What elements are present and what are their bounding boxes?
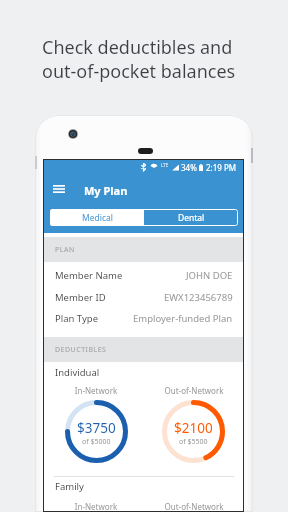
staticText: of $5000 [82, 437, 111, 447]
staticText: Out-of-Network [159, 501, 229, 512]
staticText: of $5500 [179, 437, 208, 447]
staticText: 34% [181, 162, 197, 173]
staticText: $2100 [174, 419, 213, 437]
staticText: $3750 [77, 419, 116, 437]
staticText: Member Name [55, 269, 123, 282]
button[interactable]: Member Name [55, 264, 233, 286]
staticText: Individual [55, 366, 100, 379]
button[interactable]: Dental [144, 209, 238, 226]
staticText: In-Network [61, 385, 131, 396]
staticText: In-Network [61, 501, 131, 512]
staticText: Plan Type [55, 312, 99, 325]
staticText: LTE [161, 162, 169, 168]
staticText: Medical [82, 212, 113, 224]
button[interactable]: Member ID [55, 286, 233, 308]
staticText: 2:19 PM [206, 162, 237, 173]
staticText: Check deductibles and out-of-pocket bala… [42, 35, 236, 83]
staticText: PLAN [55, 245, 75, 255]
staticText: Dental [178, 212, 205, 224]
staticText: EWX123456789 [164, 291, 233, 304]
staticText: JOHN DOE [186, 269, 233, 282]
button[interactable]: Open navigation menu [47, 179, 70, 199]
button[interactable]: Medical [50, 209, 144, 226]
staticText: Member ID [55, 291, 106, 304]
staticText: Out-of-Network [159, 385, 229, 396]
staticText: Employer-funded Plan [133, 312, 233, 325]
staticText: Family [55, 480, 84, 493]
staticText: My Plan [84, 183, 128, 198]
button[interactable]: Plan Type [55, 307, 233, 329]
staticText: DEDUCTIBLES [55, 345, 107, 355]
